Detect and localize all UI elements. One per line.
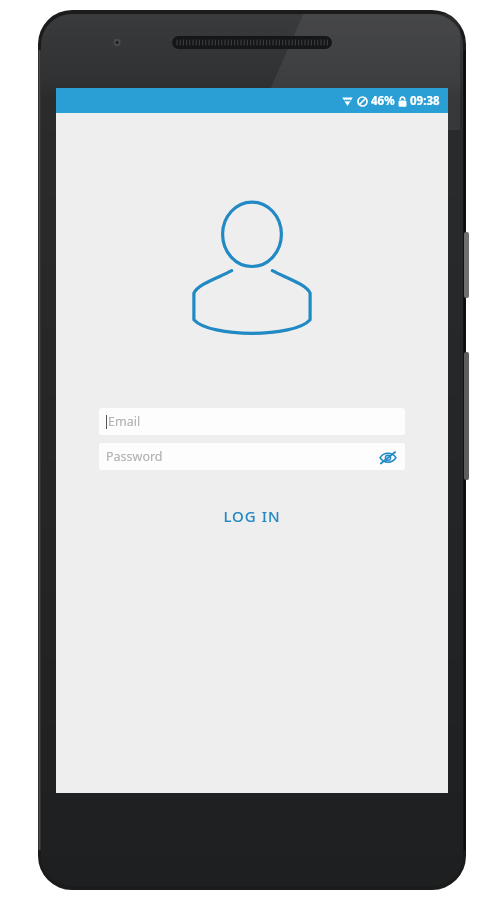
button[interactable]: LOG IN [99, 496, 405, 536]
button[interactable]: Email [99, 408, 405, 435]
staticText: 46% [371, 93, 395, 109]
staticText: Password [106, 448, 163, 465]
button[interactable]: Show password [377, 446, 399, 468]
staticText: LOG IN [223, 506, 281, 526]
button[interactable]: Password [99, 443, 405, 470]
other: Profile avatar [182, 200, 322, 340]
staticText: Email [108, 413, 141, 430]
staticText: 09:38 [410, 93, 440, 109]
